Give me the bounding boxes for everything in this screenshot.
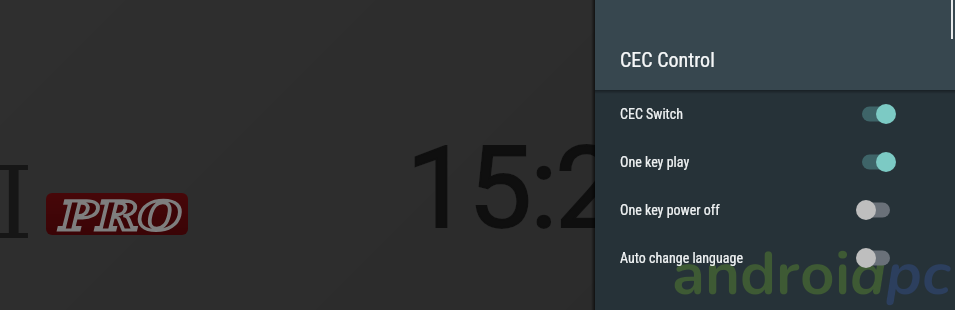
staticText: One key power off bbox=[620, 202, 720, 218]
button[interactable]: Auto change language bbox=[595, 234, 955, 282]
staticText: CEC Switch bbox=[620, 106, 683, 122]
button[interactable]: One key play bbox=[595, 138, 955, 186]
button[interactable]: One key power off bbox=[595, 186, 955, 234]
staticText: CEC Control bbox=[620, 48, 715, 71]
button[interactable]: CEC Switch bbox=[595, 90, 955, 138]
staticText: Auto change language bbox=[620, 250, 743, 266]
staticText: One key play bbox=[620, 154, 690, 170]
